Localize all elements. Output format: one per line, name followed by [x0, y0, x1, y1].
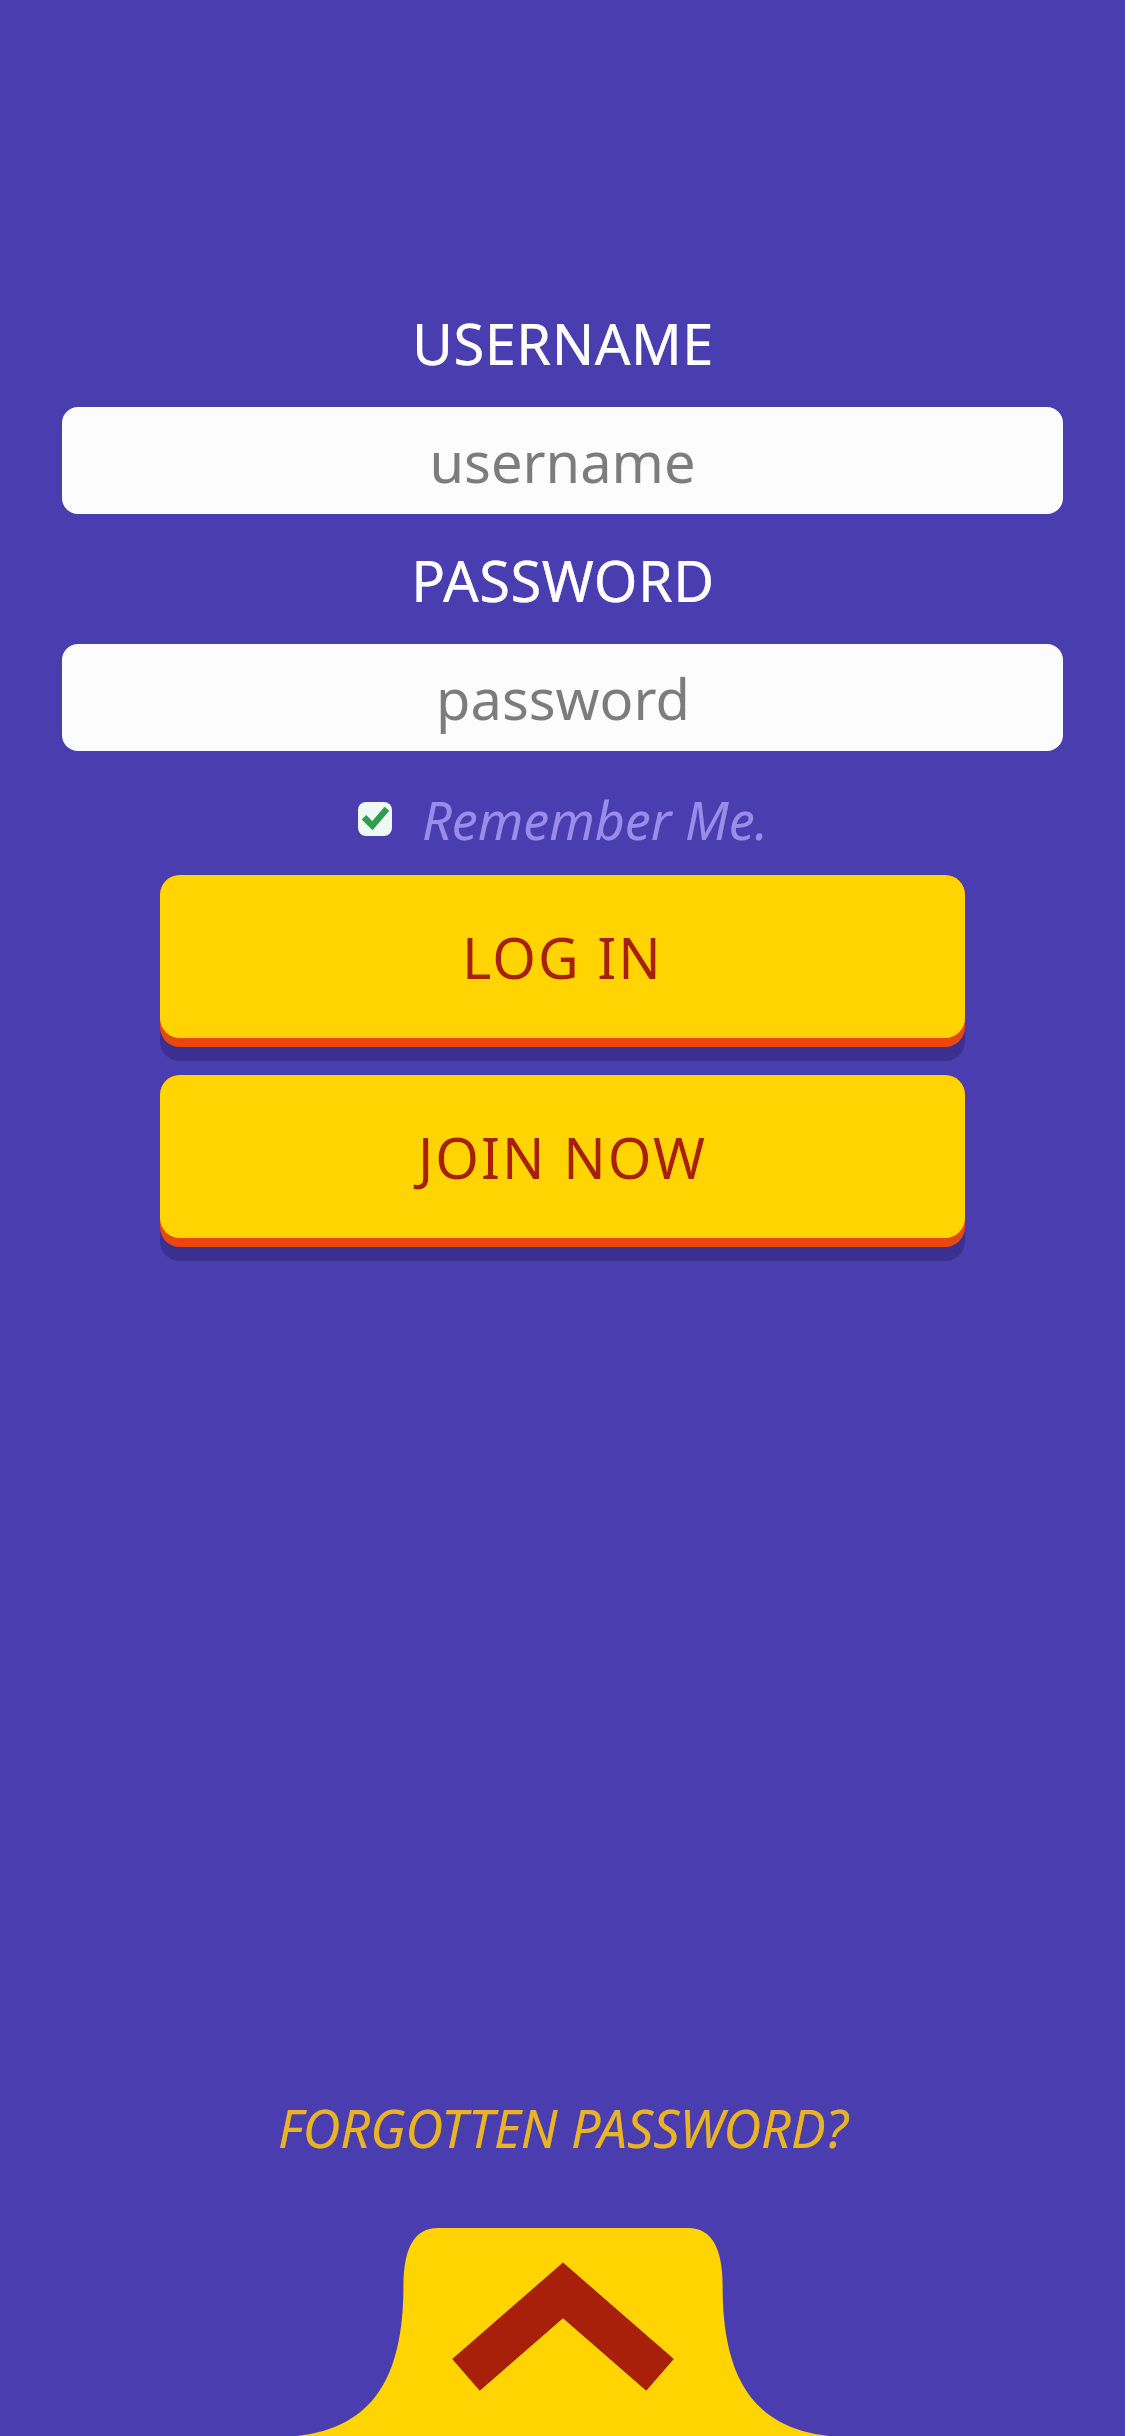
button[interactable]: JOIN NOW: [160, 1075, 965, 1261]
staticText: USERNAME: [412, 305, 714, 381]
button[interactable]: username: [62, 407, 1063, 514]
button[interactable]: Expand: [283, 2228, 843, 2436]
button[interactable]: password: [62, 644, 1063, 751]
button[interactable]: Remember Me.: [358, 779, 768, 859]
button[interactable]: FORGOTTEN PASSWORD?: [0, 2082, 1125, 2172]
staticText: LOG IN: [462, 919, 663, 995]
staticText: FORGOTTEN PASSWORD?: [278, 2092, 848, 2163]
staticText: Remember Me.: [422, 784, 768, 855]
staticText: PASSWORD: [411, 542, 715, 618]
staticText: JOIN NOW: [418, 1119, 707, 1195]
staticText: username: [429, 423, 696, 499]
staticText: password: [436, 660, 690, 736]
button[interactable]: LOG IN: [160, 875, 965, 1061]
